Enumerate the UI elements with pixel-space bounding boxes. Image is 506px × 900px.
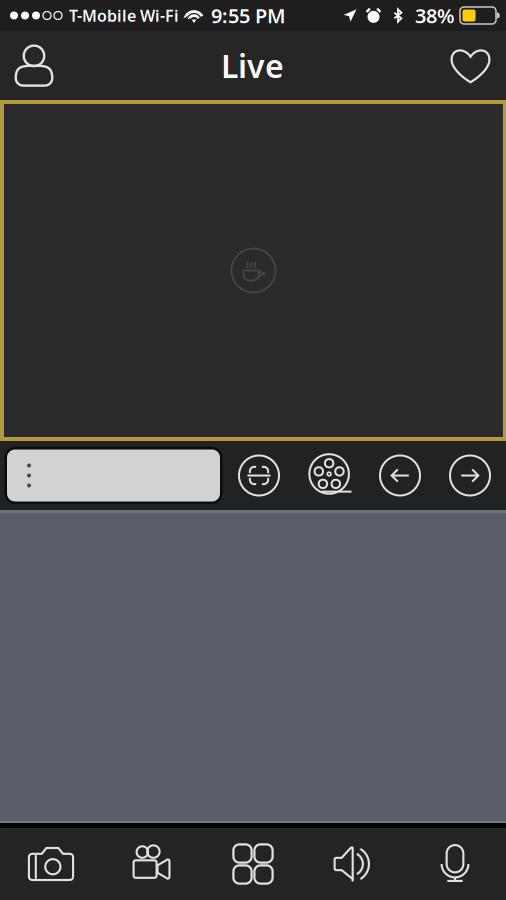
- button[interactable]: Profile: [0, 31, 68, 100]
- button[interactable]: Microphone: [404, 828, 505, 900]
- button[interactable]: Recordings: [306, 441, 354, 510]
- button[interactable]: Photo: [0, 828, 101, 900]
- button[interactable]: Next: [446, 441, 494, 510]
- staticText: T-Mobile Wi-Fi: [69, 5, 179, 26]
- staticText: Live: [221, 44, 284, 87]
- button[interactable]: Favorites: [437, 31, 504, 100]
- button[interactable]: Video: [101, 828, 202, 900]
- button[interactable]: Grid: [202, 828, 303, 900]
- button[interactable]: Audio: [303, 828, 404, 900]
- button[interactable]: Scan: [235, 441, 283, 510]
- button[interactable]: Menu: [0, 441, 227, 510]
- staticText: 9:55 PM: [211, 2, 286, 29]
- staticText: 38%: [415, 2, 455, 29]
- button[interactable]: Previous: [376, 441, 424, 510]
